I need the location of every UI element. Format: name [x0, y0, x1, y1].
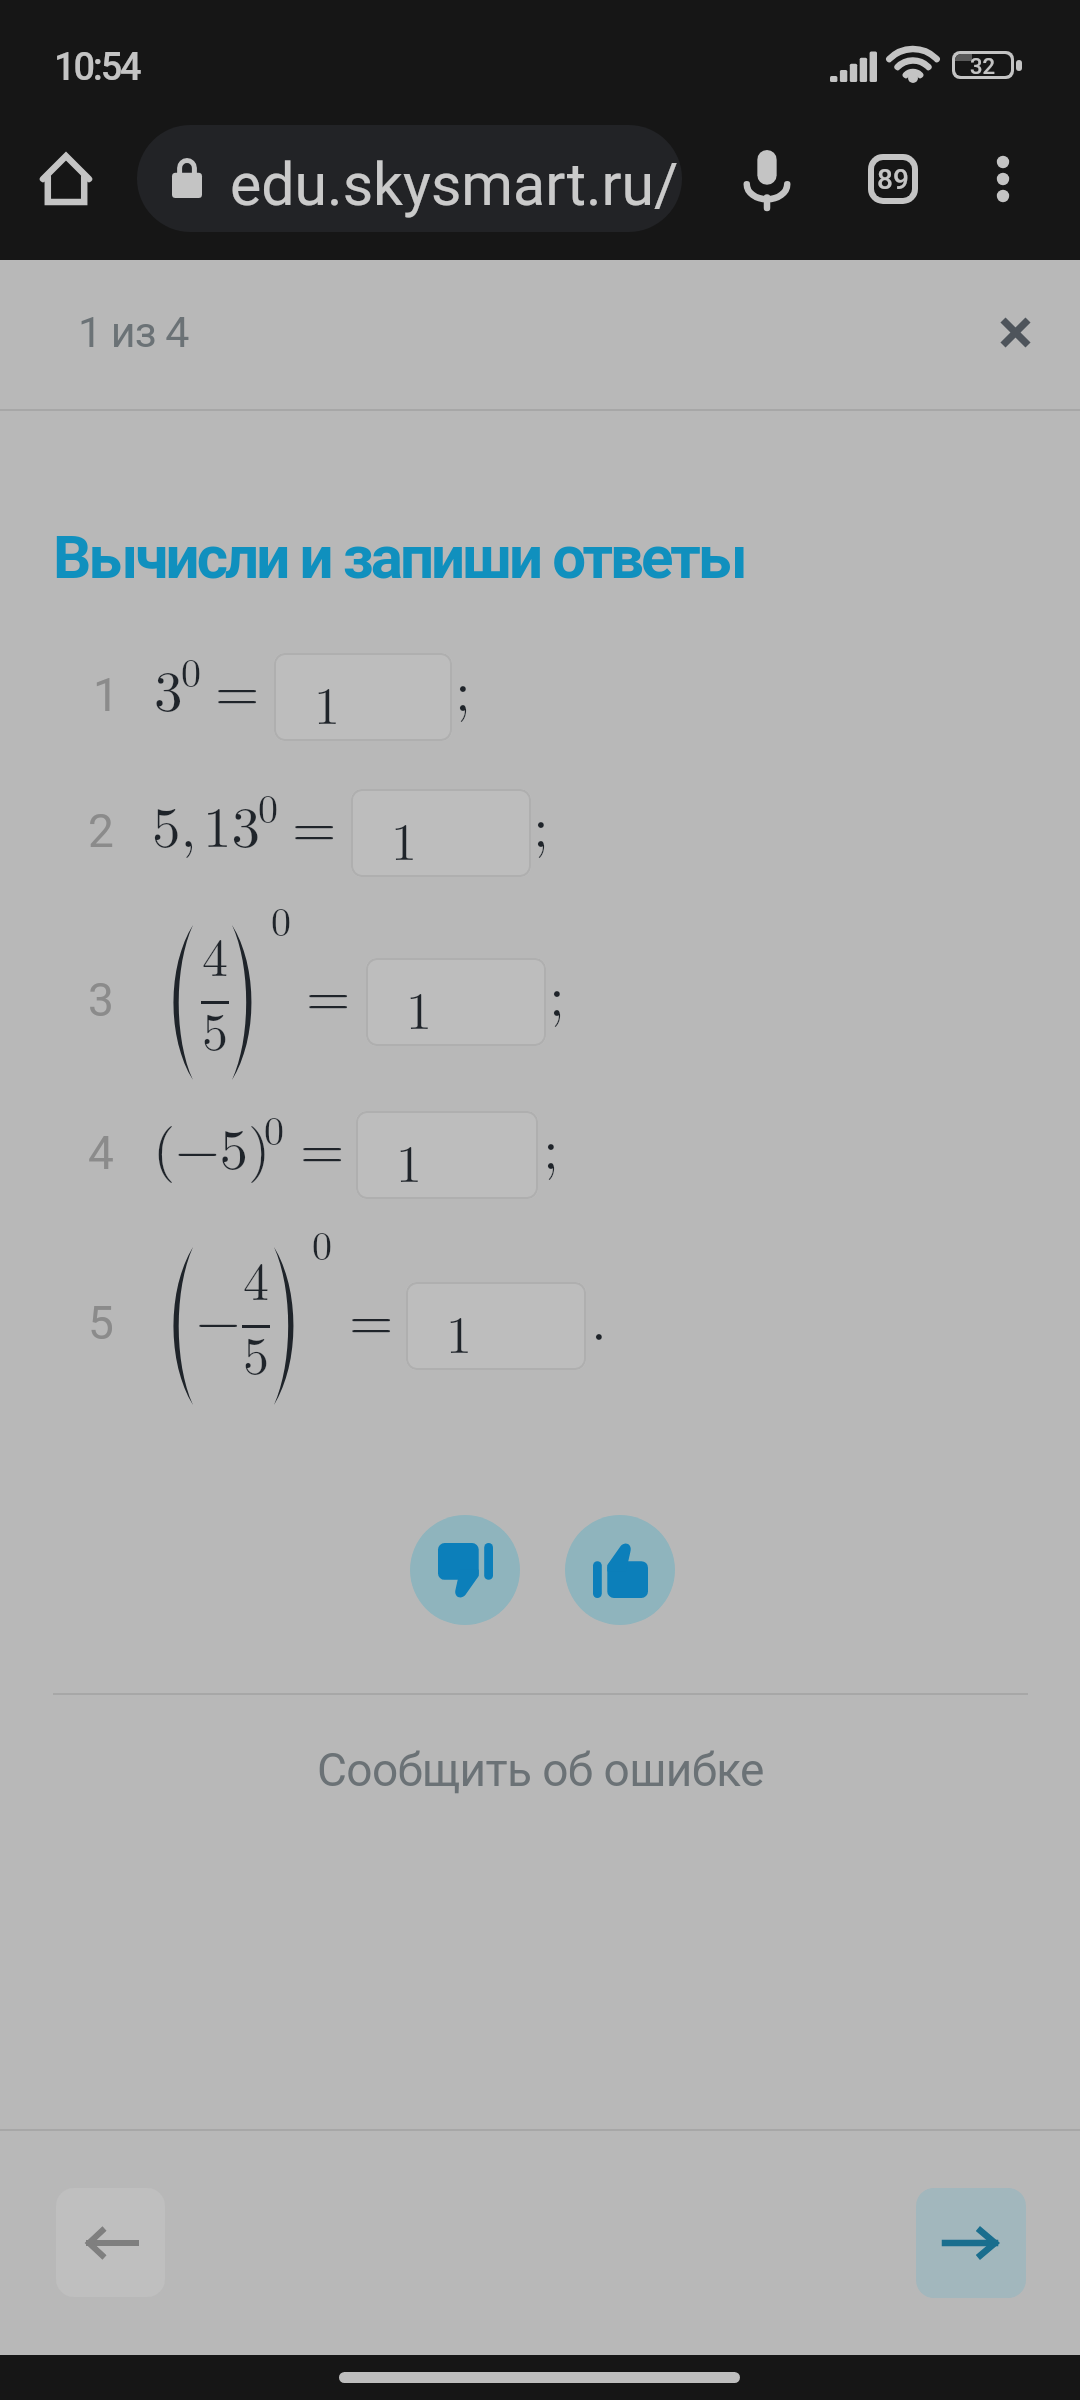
- button[interactable]: Dislike: [410, 1515, 520, 1625]
- staticText: 32: [970, 54, 996, 76]
- button[interactable]: 1: [351, 789, 531, 877]
- button[interactable]: Previous: [56, 2188, 165, 2297]
- staticText: 4: [202, 917, 229, 991]
- button[interactable]: 1: [356, 1111, 538, 1199]
- staticText: 89: [877, 163, 909, 196]
- button[interactable]: 1: [366, 958, 546, 1046]
- staticText: 5: [202, 991, 229, 1065]
- staticText: 0: [181, 642, 201, 699]
- button[interactable]: Voice search: [727, 139, 807, 219]
- staticText: 0: [312, 1215, 332, 1272]
- staticText: =: [349, 1276, 394, 1357]
- staticText: 1: [314, 665, 341, 739]
- staticText: 1: [93, 668, 119, 722]
- staticText: 0: [264, 1100, 284, 1157]
- staticText: 5,: [152, 783, 197, 864]
- staticText: 1: [396, 1123, 423, 1197]
- staticText: 1 из 4: [78, 307, 189, 357]
- staticText: 1: [406, 970, 433, 1044]
- staticText: 5: [243, 1315, 270, 1389]
- staticText: =: [306, 952, 351, 1033]
- button[interactable]: Like: [565, 1515, 675, 1625]
- staticText: 1: [391, 801, 418, 875]
- button[interactable]: 1: [406, 1282, 586, 1370]
- staticText: Сообщить об ошибке: [317, 1743, 764, 1797]
- staticText: ;: [455, 647, 471, 728]
- staticText: 3: [88, 973, 114, 1027]
- button[interactable]: Сообщить об ошибке: [0, 1715, 1080, 1825]
- staticText: −: [196, 1276, 241, 1357]
- button[interactable]: More options: [963, 139, 1043, 219]
- staticText: 0: [271, 891, 291, 948]
- staticText: ;: [543, 1105, 559, 1186]
- staticText: =: [292, 783, 337, 864]
- button[interactable]: Close: [975, 292, 1055, 372]
- staticText: =: [300, 1105, 345, 1186]
- button[interactable]: Next: [916, 2188, 1026, 2298]
- button[interactable]: edu.skysmart.ru/: [137, 125, 682, 232]
- staticText: =: [215, 647, 260, 728]
- staticText: 4: [243, 1241, 270, 1315]
- staticText: 10:54: [54, 45, 140, 90]
- staticText: ;: [533, 783, 549, 864]
- staticText: edu.skysmart.ru/: [230, 150, 679, 219]
- staticText: 2: [88, 804, 114, 858]
- staticText: (−5): [153, 1105, 271, 1186]
- staticText: .: [591, 1276, 607, 1357]
- staticText: ;: [549, 952, 565, 1033]
- staticText: 4: [88, 1126, 114, 1180]
- button[interactable]: Tabs: [853, 139, 933, 219]
- staticText: 0: [258, 778, 278, 835]
- staticText: 3: [154, 647, 183, 728]
- button[interactable]: 1: [274, 653, 452, 741]
- staticText: 13: [203, 783, 260, 864]
- staticText: 1: [446, 1294, 473, 1368]
- staticText: Вычисли и запиши ответы: [53, 522, 745, 592]
- button[interactable]: Home: [26, 139, 106, 219]
- staticText: 5: [88, 1296, 114, 1350]
